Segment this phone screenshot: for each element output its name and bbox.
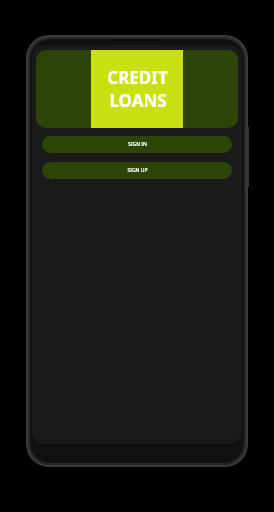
staticText: SIGN UP [127,167,148,174]
button[interactable]: SIGN UP [42,162,232,179]
staticText: CREDIT [107,66,168,89]
button[interactable]: SIGN IN [42,136,232,153]
staticText: LOANS [109,89,167,112]
staticText: SIGN IN [128,141,147,148]
